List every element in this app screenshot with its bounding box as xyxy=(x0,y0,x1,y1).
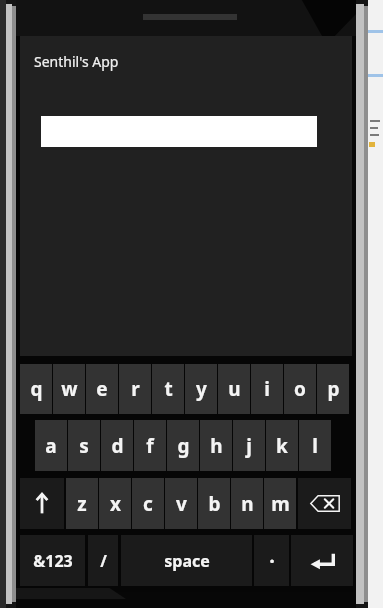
button[interactable]: x xyxy=(99,478,131,529)
staticText: j xyxy=(246,433,252,459)
button[interactable]: i xyxy=(251,364,283,414)
staticText: u xyxy=(228,376,241,402)
staticText: l xyxy=(312,433,318,459)
staticText: v xyxy=(176,491,187,517)
button[interactable]: p xyxy=(317,364,349,414)
staticText: o xyxy=(294,376,306,402)
button[interactable]: g xyxy=(167,420,199,471)
button[interactable]: Enter xyxy=(291,535,353,586)
button[interactable]: n xyxy=(231,478,263,529)
staticText: b xyxy=(208,491,221,517)
staticText: f xyxy=(146,433,154,459)
staticText: d xyxy=(111,433,124,459)
button[interactable]: d xyxy=(101,420,133,471)
button[interactable]: space xyxy=(121,535,252,586)
staticText: h xyxy=(210,433,223,459)
staticText: i xyxy=(264,376,270,402)
button[interactable]: m xyxy=(264,478,296,529)
button[interactable]: l xyxy=(299,420,331,471)
button[interactable]: Shift xyxy=(20,478,64,529)
button[interactable]: a xyxy=(35,420,67,471)
button[interactable]: f xyxy=(134,420,166,471)
staticText: space xyxy=(164,550,210,572)
button[interactable]: q xyxy=(20,364,52,414)
button[interactable]: k xyxy=(266,420,298,471)
staticText: / xyxy=(100,550,107,572)
button[interactable]: / xyxy=(88,535,118,586)
button[interactable]: r xyxy=(119,364,151,414)
button[interactable]: t xyxy=(152,364,184,414)
staticText: t xyxy=(164,376,173,402)
button[interactable]: s xyxy=(68,420,100,471)
button[interactable]: &123 xyxy=(20,535,85,586)
button[interactable]: e xyxy=(86,364,118,414)
button[interactable]: w xyxy=(53,364,85,414)
staticText: a xyxy=(45,433,57,459)
staticText: z xyxy=(77,491,87,517)
staticText: y xyxy=(196,376,207,402)
staticText: · xyxy=(269,547,275,574)
staticText: Senthil's App xyxy=(34,52,119,71)
staticText: c xyxy=(143,491,153,517)
staticText: q xyxy=(30,376,43,402)
staticText: r xyxy=(131,376,140,402)
button[interactable]: u xyxy=(218,364,250,414)
button[interactable]: Backspace xyxy=(298,478,351,529)
staticText: k xyxy=(276,433,288,459)
staticText: e xyxy=(96,376,108,402)
staticText: g xyxy=(177,433,190,459)
button[interactable]: y xyxy=(185,364,217,414)
button[interactable]: v xyxy=(165,478,197,529)
button[interactable]: c xyxy=(132,478,164,529)
staticText: m xyxy=(271,491,290,517)
staticText: n xyxy=(241,491,254,517)
button[interactable]: z xyxy=(66,478,98,529)
staticText: s xyxy=(79,433,89,459)
staticText: w xyxy=(61,376,78,402)
button[interactable]: h xyxy=(200,420,232,471)
staticText: p xyxy=(327,376,340,402)
button[interactable]: · xyxy=(254,535,289,586)
button[interactable]: j xyxy=(233,420,265,471)
staticText: &123 xyxy=(33,550,73,572)
button[interactable]: o xyxy=(284,364,316,414)
staticText: x xyxy=(110,491,121,517)
button[interactable]: b xyxy=(198,478,230,529)
